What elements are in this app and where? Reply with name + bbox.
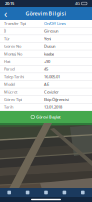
staticText: Yeni bbox=[44, 36, 51, 41]
button[interactable]: Tab bbox=[37, 188, 55, 197]
staticText: Hat bbox=[4, 59, 10, 64]
staticText: Cevizler bbox=[44, 89, 59, 94]
button[interactable]: Görevi Başlat bbox=[0, 111, 92, 123]
staticText: 4G bbox=[75, 1, 80, 6]
staticText: Transfer Tipi bbox=[4, 21, 26, 26]
staticText: AE bbox=[44, 82, 49, 87]
button[interactable]: Tab bbox=[18, 188, 37, 197]
staticText: Model bbox=[4, 82, 15, 87]
staticText: 20:15 bbox=[5, 1, 14, 6]
staticText: Görev Tipi bbox=[4, 97, 22, 102]
staticText: 16.005.01 bbox=[44, 74, 60, 79]
button[interactable]: Tab bbox=[74, 188, 92, 197]
staticText: Parsel bbox=[4, 66, 15, 72]
staticText: Dusun bbox=[44, 44, 55, 49]
staticText: Görevim Bilgisi bbox=[25, 10, 66, 17]
staticText: On/Off Lines bbox=[44, 21, 66, 26]
staticText: Mücret bbox=[4, 89, 17, 94]
button[interactable]: Tab bbox=[55, 188, 74, 197]
staticText: İl bbox=[4, 28, 6, 34]
button[interactable]: Back bbox=[0, 7, 11, 20]
staticText: 13.01.2018 bbox=[44, 104, 62, 110]
staticText: ‹ bbox=[4, 6, 7, 21]
staticText: Tür bbox=[4, 36, 10, 41]
staticText: Görev No bbox=[4, 44, 21, 49]
staticText: 45 bbox=[44, 66, 48, 72]
staticText: Montaj No bbox=[4, 51, 22, 56]
staticText: Talep Tarihi bbox=[4, 74, 24, 79]
staticText: Görevi Başlat bbox=[36, 114, 61, 120]
staticText: Tarih bbox=[4, 104, 13, 110]
staticText: Giresun bbox=[44, 28, 58, 34]
button[interactable]: Tab bbox=[0, 188, 18, 197]
staticText: +90 bbox=[44, 59, 50, 64]
staticText: Ekip Öğrencisi bbox=[44, 97, 69, 102]
staticText: kaaba bbox=[44, 51, 54, 56]
